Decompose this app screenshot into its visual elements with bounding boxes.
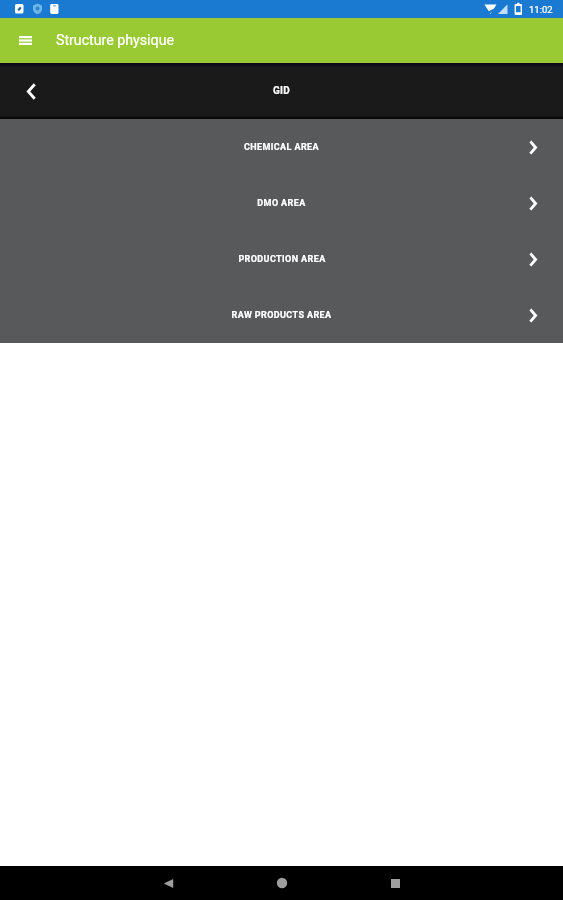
button[interactable]: DMO AREA	[0, 175, 563, 231]
staticText: Structure physique	[56, 32, 174, 49]
button[interactable]: Open navigation menu	[9, 24, 42, 57]
staticText: GID	[273, 85, 291, 97]
staticText: PRODUCTION AREA	[238, 254, 326, 265]
button[interactable]: Back	[140, 866, 196, 900]
button[interactable]: PRODUCTION AREA	[0, 231, 563, 287]
button[interactable]: Home	[254, 866, 310, 900]
staticText: RAW PRODUCTS AREA	[231, 310, 332, 321]
staticText: DMO AREA	[257, 198, 306, 209]
button[interactable]: CHEMICAL AREA	[0, 119, 563, 175]
button[interactable]: Recent apps	[367, 866, 423, 900]
staticText: CHEMICAL AREA	[244, 142, 319, 153]
staticText: 11:02	[529, 4, 553, 15]
button[interactable]: Back	[16, 76, 46, 106]
button[interactable]: RAW PRODUCTS AREA	[0, 287, 563, 343]
